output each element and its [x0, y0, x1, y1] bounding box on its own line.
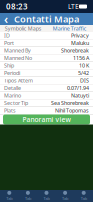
staticText: Shorebreak — [61, 47, 89, 54]
staticText: 1156 A — [73, 54, 89, 62]
staticText: Tab — [25, 196, 31, 201]
button[interactable]: Tab — [0, 191, 19, 201]
staticText: Nihil Topomas — [55, 107, 89, 114]
staticText: Symbolic Maps — [5, 25, 42, 32]
staticText: Manned No — [4, 54, 32, 62]
staticText: DIS — [80, 77, 89, 84]
staticText: Detalle — [4, 84, 21, 92]
staticText: Sea Shorebreak — [51, 99, 89, 107]
staticText: Plats — [4, 107, 16, 114]
staticText: Periodi — [4, 69, 20, 77]
staticText: 10 K — [79, 62, 89, 69]
button[interactable]: Tab — [19, 191, 37, 201]
button[interactable]: Marine Traffic — [46, 25, 93, 32]
staticText: Maluku — [71, 39, 89, 47]
button[interactable]: Back — [0, 13, 12, 25]
staticText: Contatti Mapa — [14, 13, 79, 25]
staticText: Manned By — [4, 47, 31, 54]
staticText: Port — [4, 39, 14, 47]
staticText: 08:23 — [6, 1, 28, 12]
staticText: Panorami view — [22, 115, 70, 124]
staticText: Tab — [6, 196, 12, 201]
button[interactable]: Tab — [74, 191, 93, 201]
staticText: Tab — [62, 196, 68, 201]
button[interactable]: Tab — [56, 191, 74, 201]
staticText: LTE — [68, 2, 79, 11]
staticText: 5/42 — [78, 69, 89, 77]
staticText: Marino — [4, 92, 21, 99]
button[interactable]: Tab — [37, 191, 56, 201]
staticText: Tipos Attem — [4, 77, 33, 84]
staticText: Ship — [4, 62, 14, 69]
staticText: ID — [4, 32, 10, 39]
staticText: Marine Traffic — [53, 25, 87, 32]
staticText: Natuyti — [71, 92, 89, 99]
staticText: 0.07/1.94 — [67, 84, 89, 92]
staticText: Privacy — [71, 32, 89, 39]
staticText: Sector Tip — [4, 99, 28, 107]
button[interactable]: Symbolic Maps — [0, 25, 46, 32]
staticText: ‹ — [4, 11, 8, 27]
staticText: Tab — [43, 196, 49, 201]
button[interactable]: Panorami view — [0, 114, 93, 124]
staticText: Tab — [81, 196, 87, 201]
